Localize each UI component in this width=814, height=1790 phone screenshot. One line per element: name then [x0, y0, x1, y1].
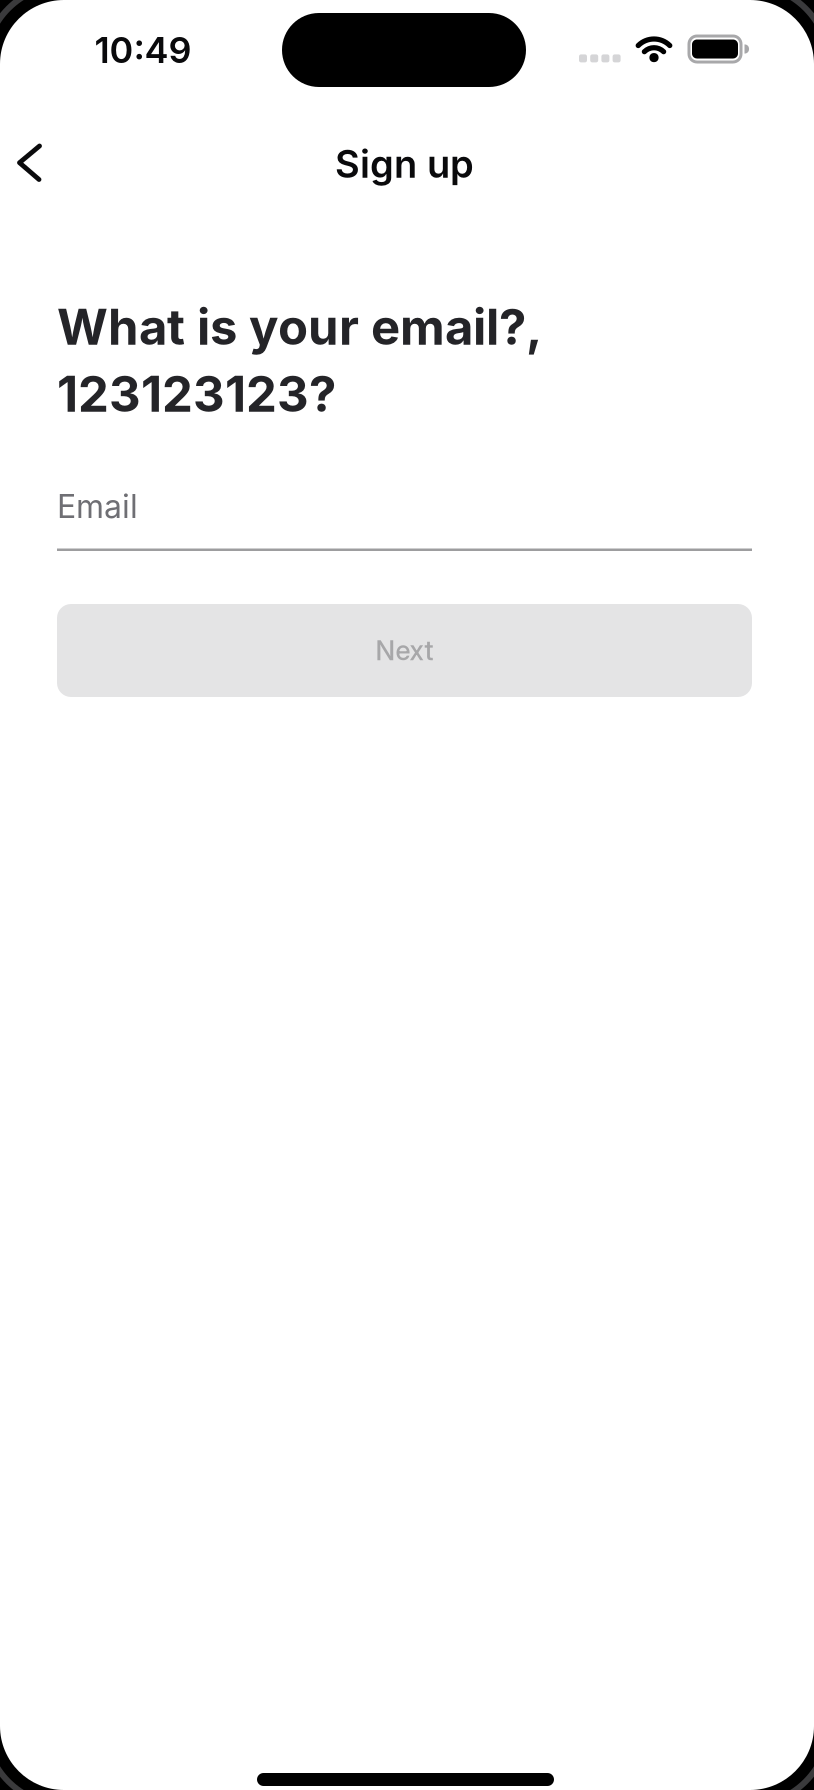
- button[interactable]: Email: [57, 474, 752, 551]
- staticText: 10:49: [94, 29, 191, 71]
- button[interactable]: Next: [57, 604, 752, 697]
- button[interactable]: Back: [8, 128, 72, 196]
- staticText: Sign up: [335, 142, 474, 186]
- staticText: Email: [57, 487, 138, 525]
- staticText: What is your email?,: [57, 298, 542, 356]
- staticText: 123123123?: [57, 365, 336, 423]
- staticText: Next: [375, 635, 433, 666]
